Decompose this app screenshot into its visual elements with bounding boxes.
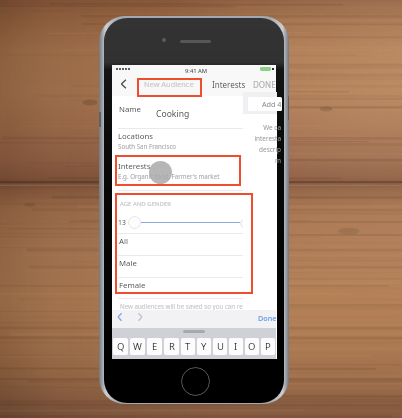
button[interactable]: E [147,338,162,355]
staticText: Cooking [156,108,190,120]
staticText: U [217,340,224,353]
staticText: We ca [247,123,281,132]
button[interactable]: Locations [112,129,276,156]
staticText: E.g. Organic food, Farmer's market [118,172,220,180]
staticText: Locations [118,131,154,142]
staticText: Male [119,258,137,269]
staticText: 13 [118,218,126,227]
staticText: Name [119,104,141,115]
button[interactable]: P [261,338,275,355]
staticText: Q [117,340,125,353]
button[interactable]: W [130,338,145,355]
staticText: m [247,156,281,165]
button[interactable]: Q [113,338,128,355]
staticText: Interests [212,79,246,90]
staticText: E [152,340,158,353]
button[interactable]: Interests [112,157,276,190]
staticText: O [248,340,256,353]
staticText: Add 4 [262,99,282,109]
staticText: 9:41 AM [185,67,208,75]
button[interactable]: Name [112,96,276,128]
staticText: R [169,340,175,353]
staticText: W [133,340,142,353]
staticText: interesta [247,134,281,143]
staticText: I [234,340,238,353]
staticText: New audiences will be saved so you can r… [120,302,253,310]
button[interactable]: All [112,234,276,255]
staticText: descrip [247,145,281,154]
button[interactable]: Next field [134,311,146,323]
button[interactable]: Back [114,77,133,91]
staticText: Female [119,280,146,291]
staticText: Done [258,313,277,323]
button[interactable]: U [213,338,227,355]
button[interactable]: New Audience [137,77,201,91]
button[interactable]: O [245,338,259,355]
button[interactable]: Y [197,338,211,355]
button[interactable]: T [181,338,195,355]
button[interactable]: Add 4 [248,97,282,111]
button[interactable]: Done [255,313,280,323]
staticText: DONE [253,79,276,90]
button[interactable]: Female [112,278,276,298]
button[interactable]: R [164,338,179,355]
staticText: South San Francisco [118,142,177,150]
staticText: T [185,340,191,353]
staticText: P [265,340,271,353]
staticText: New Audience [144,79,194,89]
button[interactable]: Previous field [114,311,126,323]
staticText: Interests [118,161,151,172]
button[interactable]: Minimum age [128,216,141,229]
staticText: All [119,236,129,247]
button[interactable]: I [229,338,243,355]
staticText: AGE AND GENDER [120,200,172,208]
staticText: Y [201,340,207,353]
button[interactable]: Male [112,256,276,277]
button[interactable]: DONE [251,77,278,91]
button[interactable]: Interests [210,77,248,91]
